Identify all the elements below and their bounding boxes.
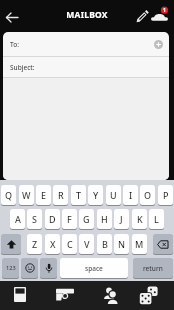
staticText: Q [5, 189, 13, 201]
staticText: K [137, 213, 143, 225]
button[interactable]: V [79, 234, 94, 254]
button[interactable] [154, 40, 163, 49]
button[interactable]: D [45, 209, 60, 229]
button[interactable]: 123 [2, 258, 19, 278]
button[interactable]: Z [27, 234, 42, 254]
staticText: 1 [163, 7, 166, 14]
button[interactable]: N [114, 234, 129, 254]
button[interactable]: P [158, 185, 173, 205]
staticText: O [144, 189, 152, 201]
staticText: L [154, 213, 159, 225]
button[interactable]: O [140, 185, 155, 205]
staticText: N [118, 238, 125, 250]
staticText: Z [32, 238, 38, 250]
staticText: 123 [6, 264, 16, 272]
button[interactable]: S [27, 209, 42, 229]
button[interactable] [21, 258, 38, 278]
button[interactable]: X [45, 234, 60, 254]
button[interactable]: B [97, 234, 112, 254]
button[interactable]: F [62, 209, 77, 229]
button[interactable]: T [71, 185, 86, 205]
button[interactable]: R [53, 185, 68, 205]
staticText: Y [93, 189, 99, 201]
staticText: B [102, 238, 108, 250]
staticText: R [58, 189, 64, 201]
button[interactable] [135, 9, 150, 24]
button[interactable]: U [106, 185, 121, 205]
button[interactable] [13, 286, 27, 303]
button[interactable] [55, 287, 75, 301]
button[interactable] [103, 285, 120, 304]
button[interactable]: I [123, 185, 138, 205]
staticText: J [120, 213, 123, 225]
staticText: V [84, 238, 90, 250]
staticText: M [135, 238, 144, 250]
staticText: S [32, 213, 37, 225]
staticText: H [101, 213, 108, 225]
button[interactable] [153, 234, 173, 254]
button[interactable]: W [19, 185, 34, 205]
button[interactable] [40, 258, 57, 278]
staticText: T [76, 189, 82, 201]
button[interactable]: Y [88, 185, 103, 205]
button[interactable]: Q [1, 185, 16, 205]
button[interactable]: H [97, 209, 112, 229]
staticText: F [67, 213, 72, 225]
button[interactable]: space [60, 258, 128, 278]
staticText: Subject: [10, 63, 35, 72]
button[interactable]: G [79, 209, 94, 229]
staticText: W [22, 189, 31, 201]
staticText: A [15, 213, 21, 225]
staticText: P [163, 189, 169, 201]
staticText: To: [10, 40, 19, 49]
staticText: space [85, 264, 103, 273]
staticText: D [49, 213, 56, 225]
button[interactable]: M [132, 234, 147, 254]
button[interactable]: 1 [150, 4, 171, 23]
button[interactable] [139, 286, 159, 305]
button[interactable]: J [114, 209, 129, 229]
staticText: G [83, 213, 90, 225]
button[interactable]: E [36, 185, 51, 205]
staticText: E [41, 189, 47, 201]
button[interactable] [1, 234, 21, 254]
staticText: U [110, 189, 117, 201]
staticText: return [143, 264, 163, 273]
staticText: C [67, 238, 73, 250]
button[interactable]: Subject: [3, 57, 169, 77]
staticText: MAILBOX [0, 9, 174, 21]
button[interactable]: L [149, 209, 164, 229]
staticText: X [50, 238, 56, 250]
button[interactable] [3, 78, 169, 180]
button[interactable]: A [10, 209, 25, 229]
button[interactable]: return [133, 258, 173, 278]
staticText: I [129, 189, 133, 201]
button[interactable] [2, 8, 22, 26]
button[interactable]: K [132, 209, 147, 229]
button[interactable]: C [62, 234, 77, 254]
button[interactable]: To: [3, 32, 169, 56]
